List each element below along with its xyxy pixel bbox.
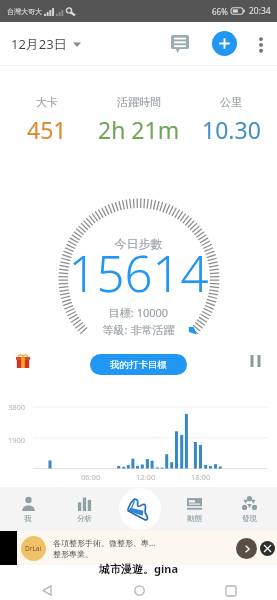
staticText: 台灣大哥大 (7, 7, 42, 16)
button[interactable]: Messages (164, 28, 196, 60)
staticText: 各項整形手術。微整形。專… (53, 537, 156, 548)
staticText: 3800 (8, 402, 26, 412)
button[interactable]: Open ad (236, 538, 257, 559)
staticText: 今日步數 (0, 236, 277, 251)
staticText: 12:00 (136, 472, 156, 482)
staticText: DrLai (25, 544, 42, 553)
staticText: 大卡 (36, 95, 58, 109)
button[interactable]: 活躍時間 (93, 95, 185, 145)
button[interactable]: Activity (119, 488, 161, 530)
staticText: 15614 (0, 240, 277, 307)
button[interactable]: 12月23日 (0, 22, 89, 66)
button[interactable]: Back (0, 573, 93, 600)
staticText: 1900 (8, 435, 26, 445)
staticText: 06:00 (81, 472, 101, 482)
button[interactable]: 分析 (56, 487, 112, 531)
button[interactable]: More options (247, 32, 275, 60)
button[interactable]: Recents (185, 573, 277, 600)
staticText: 12月23日 (11, 35, 67, 53)
button[interactable]: Pause (244, 350, 266, 372)
staticText: 等級: 非常活躍 (0, 322, 277, 337)
staticText: 10.30 (202, 114, 261, 145)
button[interactable]: 大卡 (0, 95, 93, 145)
staticText: 我 (24, 514, 32, 523)
button[interactable]: 動態 (167, 487, 222, 531)
staticText: 我的打卡目標 (110, 359, 167, 371)
staticText: 18:00 (191, 472, 211, 482)
staticText: 發現 (242, 514, 257, 523)
staticText: 整形專業。 (53, 549, 93, 559)
button[interactable]: Home (93, 573, 185, 600)
staticText: 分析 (77, 514, 92, 523)
staticText: 活躍時間 (117, 95, 161, 109)
staticText: 2h 21m (98, 114, 180, 145)
staticText: 20:34 (249, 5, 271, 17)
button[interactable]: 公里 (185, 95, 277, 145)
button[interactable]: 我的打卡目標 (90, 354, 187, 375)
button[interactable]: Close ad (260, 541, 275, 556)
staticText: 城市漫遊。gina (0, 561, 277, 576)
button[interactable]: 發現 (222, 487, 277, 531)
staticText: 動態 (187, 514, 202, 523)
staticText: 66% (212, 6, 228, 17)
button[interactable]: Add (209, 28, 240, 59)
button[interactable]: Rewards (12, 350, 34, 372)
staticText: 目標: 10000 (0, 305, 277, 320)
staticText: 451 (27, 114, 67, 145)
staticText: 公里 (220, 95, 242, 109)
button[interactable]: 我 (0, 487, 56, 531)
